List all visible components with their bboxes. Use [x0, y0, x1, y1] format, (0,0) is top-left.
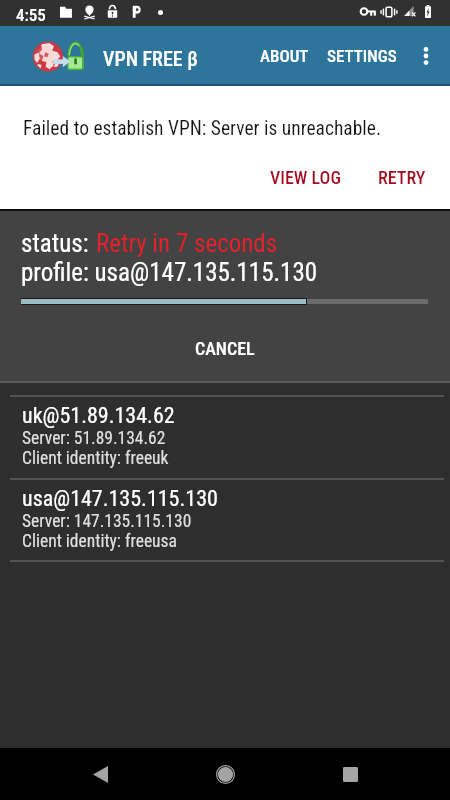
button[interactable]: Home [195, 748, 255, 800]
button[interactable]: Back [70, 748, 130, 800]
button[interactable]: More options [408, 26, 444, 86]
button[interactable]: SETTINGS [320, 26, 404, 86]
button[interactable]: uk@51.89.134.62 [0, 396, 450, 477]
staticText: ABOUT [260, 46, 309, 66]
staticText: Client identity: freeusa [22, 531, 177, 552]
staticText: status: [21, 229, 89, 258]
staticText: 4:55 [16, 5, 46, 25]
button[interactable]: CANCEL [0, 326, 450, 370]
button[interactable]: RETRY [366, 158, 438, 196]
staticText: Server: 51.89.134.62 [22, 428, 166, 449]
button[interactable]: ABOUT [248, 26, 320, 86]
staticText: Client identity: freeuk [22, 448, 169, 469]
staticText: SETTINGS [327, 46, 397, 66]
button[interactable]: VIEW LOG [258, 158, 354, 196]
staticText: uk@51.89.134.62 [22, 403, 175, 429]
staticText: Server: 147.135.115.130 [22, 511, 192, 532]
button[interactable]: Recents [320, 748, 380, 800]
staticText: VIEW LOG [270, 167, 342, 188]
staticText: usa@147.135.115.130 [22, 486, 218, 512]
staticText: RETRY [378, 167, 426, 188]
staticText: profile: usa@147.135.115.130 [21, 258, 318, 287]
staticText: Failed to establish VPN: Server is unrea… [23, 117, 382, 140]
staticText: CANCEL [195, 338, 255, 359]
staticText: Retry in 7 seconds [96, 229, 278, 258]
button[interactable]: usa@147.135.115.130 [0, 479, 450, 560]
staticText: VPN FREE β [103, 47, 198, 70]
